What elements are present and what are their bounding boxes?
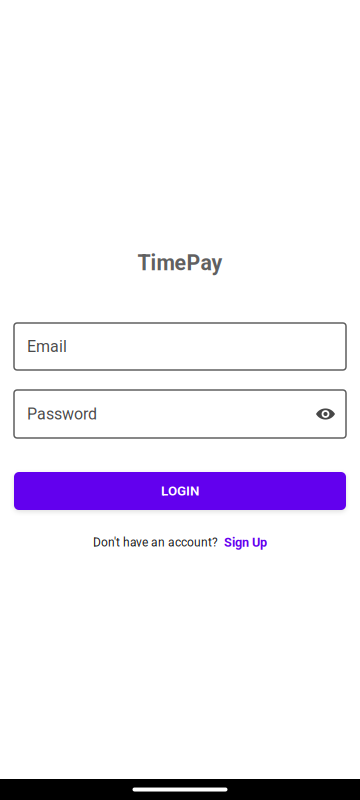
staticText: Sign Up	[224, 535, 267, 550]
staticText: TimePay	[137, 250, 222, 275]
staticText: Password	[27, 405, 97, 423]
button[interactable]: Email	[14, 323, 346, 370]
staticText: Don't have an account?	[93, 535, 218, 549]
button[interactable]: Password	[14, 390, 346, 438]
staticText: LOGIN	[161, 483, 199, 499]
button[interactable]: Sign Up	[224, 535, 267, 550]
button[interactable]: LOGIN	[14, 472, 346, 510]
staticText: Email	[27, 337, 67, 356]
